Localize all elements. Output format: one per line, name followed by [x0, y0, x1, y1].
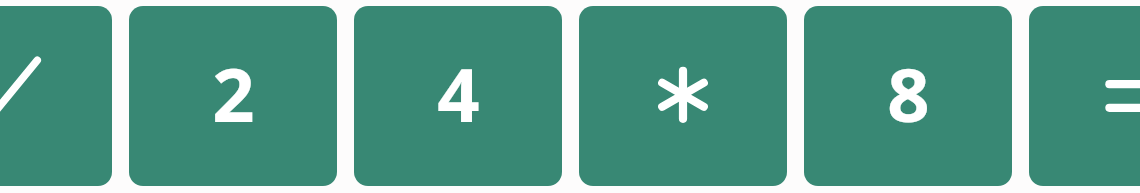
- button[interactable]: 4: [354, 6, 562, 186]
- button[interactable]: 8: [804, 6, 1012, 186]
- button[interactable]: Equals: [1029, 6, 1140, 186]
- staticText: 2: [212, 43, 255, 144]
- staticText: 4: [437, 43, 480, 144]
- button[interactable]: Multiply: [579, 6, 787, 186]
- button[interactable]: 2: [129, 6, 337, 186]
- staticText: 8: [887, 43, 930, 144]
- button[interactable]: Divide: [0, 6, 112, 186]
